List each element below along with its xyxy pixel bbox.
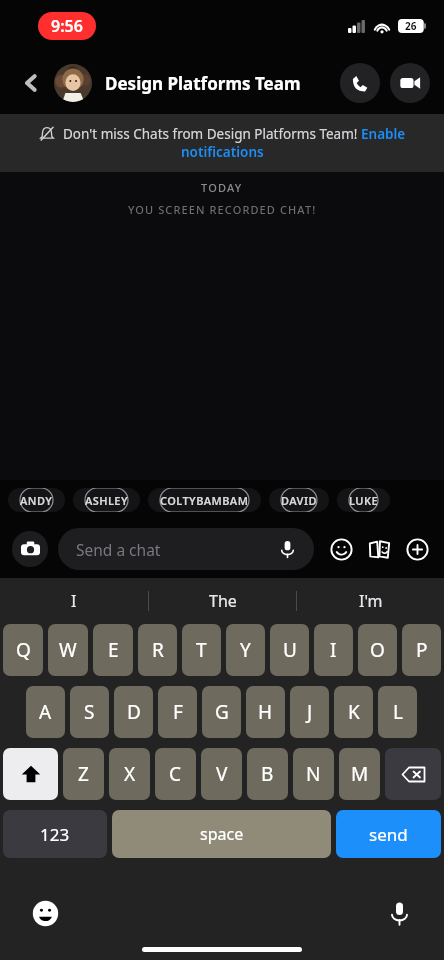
- button[interactable]: T: [182, 624, 221, 676]
- button[interactable]: M: [339, 748, 380, 800]
- staticText: G: [215, 699, 229, 725]
- staticText: 26: [405, 19, 417, 33]
- button[interactable]: send: [336, 810, 441, 858]
- button[interactable]: G: [202, 686, 241, 738]
- button[interactable]: Group avatar: [54, 64, 92, 102]
- button[interactable]: V: [201, 748, 242, 800]
- staticText: D: [127, 699, 141, 725]
- staticText: The: [209, 590, 237, 612]
- button[interactable]: ASHLEY: [73, 488, 140, 512]
- button[interactable]: space: [112, 810, 331, 858]
- staticText: A: [39, 699, 52, 725]
- button[interactable]: X: [109, 748, 150, 800]
- staticText: S: [84, 699, 95, 725]
- staticText: J: [307, 699, 313, 725]
- staticText: E: [108, 637, 119, 663]
- staticText: H: [258, 699, 273, 725]
- staticText: I: [71, 590, 77, 612]
- staticText: Enable: [361, 125, 406, 143]
- staticText: Q: [16, 637, 31, 663]
- staticText: COLTYBAMBAM: [160, 493, 249, 508]
- button[interactable]: Q: [3, 624, 43, 676]
- staticText: notifications: [181, 143, 264, 161]
- button[interactable]: O: [358, 624, 397, 676]
- button[interactable]: Back: [14, 66, 48, 100]
- button[interactable]: L: [378, 686, 417, 738]
- button[interactable]: Z: [63, 748, 104, 800]
- staticText: 9:56: [51, 15, 83, 37]
- button[interactable]: The: [149, 578, 296, 624]
- staticText: 123: [40, 823, 70, 846]
- staticText: I'm: [359, 590, 383, 612]
- staticText: C: [169, 761, 182, 787]
- button[interactable]: DAVID: [269, 488, 329, 512]
- staticText: V: [216, 761, 228, 787]
- button[interactable]: U: [270, 624, 309, 676]
- staticText: ANDY: [20, 493, 53, 508]
- button[interactable]: ANDY: [8, 488, 65, 512]
- staticText: T: [196, 637, 207, 663]
- staticText: send: [369, 823, 408, 846]
- button[interactable]: D: [114, 686, 153, 738]
- staticText: Send a chat: [76, 539, 161, 560]
- staticText: Y: [240, 637, 251, 663]
- button[interactable]: Stickers: [326, 534, 356, 564]
- staticText: I: [330, 637, 337, 663]
- button[interactable]: 123: [3, 810, 107, 858]
- button[interactable]: E: [93, 624, 133, 676]
- button[interactable]: Backspace: [385, 748, 441, 800]
- staticText: Design Platforms Team: [105, 72, 301, 95]
- staticText: P: [416, 637, 428, 663]
- button[interactable]: R: [138, 624, 177, 676]
- staticText: W: [59, 637, 77, 663]
- button[interactable]: N: [293, 748, 334, 800]
- button[interactable]: Cameos: [364, 534, 394, 564]
- button[interactable]: I: [314, 624, 353, 676]
- staticText: B: [261, 761, 274, 787]
- staticText: N: [306, 761, 321, 787]
- staticText: YOU SCREEN RECORDED CHAT!: [128, 202, 317, 217]
- button[interactable]: P: [402, 624, 441, 676]
- button[interactable]: S: [70, 686, 109, 738]
- button[interactable]: I'm: [297, 578, 444, 624]
- button[interactable]: Shift: [3, 748, 58, 800]
- button[interactable]: Video call: [390, 63, 430, 103]
- staticText: L: [393, 699, 403, 725]
- button[interactable]: I: [0, 578, 148, 624]
- button[interactable]: Emoji: [28, 896, 62, 930]
- staticText: K: [348, 699, 360, 725]
- button[interactable]: Voice input: [382, 896, 416, 930]
- button[interactable]: B: [247, 748, 288, 800]
- button[interactable]: C: [155, 748, 196, 800]
- button[interactable]: H: [246, 686, 285, 738]
- button[interactable]: LUKE: [337, 488, 390, 512]
- staticText: LUKE: [349, 493, 378, 508]
- staticText: F: [173, 699, 183, 725]
- button[interactable]: Send a chat: [58, 528, 314, 570]
- button[interactable]: Call: [340, 63, 380, 103]
- staticText: M: [351, 761, 369, 787]
- button[interactable]: F: [158, 686, 197, 738]
- staticText: X: [124, 761, 136, 787]
- staticText: R: [152, 637, 164, 663]
- staticText: space: [200, 823, 244, 845]
- button[interactable]: W: [48, 624, 88, 676]
- staticText: O: [370, 637, 385, 663]
- button[interactable]: K: [334, 686, 373, 738]
- button[interactable]: Don't miss Chats from Design Platforms T…: [0, 114, 444, 172]
- staticText: DAVID: [281, 493, 317, 508]
- button[interactable]: J: [290, 686, 329, 738]
- button[interactable]: Add: [402, 534, 432, 564]
- button[interactable]: Camera: [12, 531, 48, 567]
- button[interactable]: COLTYBAMBAM: [148, 488, 261, 512]
- button[interactable]: Y: [226, 624, 265, 676]
- staticText: Don't miss Chats from Design Platforms T…: [63, 125, 361, 143]
- staticText: ASHLEY: [85, 493, 128, 508]
- staticText: U: [283, 637, 297, 663]
- staticText: TODAY: [201, 180, 243, 195]
- staticText: Z: [78, 761, 89, 787]
- button[interactable]: A: [26, 686, 65, 738]
